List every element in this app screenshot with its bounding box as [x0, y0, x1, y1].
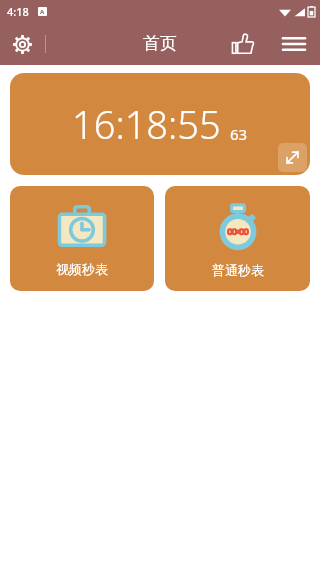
- staticText: 普通秒表: [212, 262, 264, 278]
- staticText: 4:18: [7, 4, 29, 19]
- staticText: 视频秒表: [56, 261, 108, 277]
- button[interactable]: Expand: [278, 143, 307, 172]
- staticText: 首页: [143, 33, 177, 54]
- button[interactable]: Like: [224, 25, 262, 63]
- button[interactable]: 视频秒表: [10, 186, 154, 291]
- staticText: A: [40, 8, 45, 16]
- button[interactable]: Settings: [4, 26, 40, 62]
- button[interactable]: 普通秒表: [165, 186, 310, 291]
- button[interactable]: Menu: [276, 26, 312, 62]
- button[interactable]: 16:18:55: [10, 73, 310, 175]
- staticText: 63: [230, 124, 248, 144]
- staticText: 16:18:55: [72, 98, 221, 150]
